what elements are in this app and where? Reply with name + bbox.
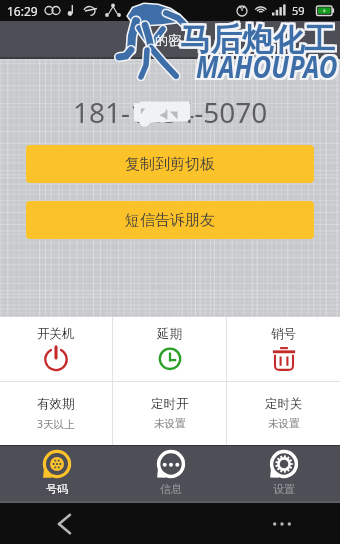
button[interactable]: Menu: [267, 509, 297, 539]
staticText: 马后炮化工: [178, 20, 333, 59]
staticText: 未设置: [154, 417, 186, 430]
staticText: 信息: [160, 482, 182, 496]
button[interactable]: 号码: [0, 446, 114, 496]
staticText: 马后炮化工: [180, 18, 335, 57]
staticText: 定时关: [265, 396, 303, 412]
staticText: MAHOUPAO: [194, 45, 336, 87]
button[interactable]: 销号: [227, 317, 340, 372]
staticText: 3天以上: [37, 417, 75, 431]
button[interactable]: 延期: [113, 317, 226, 370]
staticText: 59: [292, 3, 305, 18]
staticText: 马后炮化工: [182, 22, 337, 61]
staticText: 延期: [157, 326, 182, 342]
staticText: 设置: [273, 482, 295, 496]
button[interactable]: Back: [50, 509, 80, 539]
button[interactable]: 定时开: [113, 382, 226, 430]
staticText: 马后炮化工: [182, 18, 337, 57]
staticText: MAHOUPAO: [198, 45, 340, 87]
staticText: 181-1234-5070: [73, 93, 268, 131]
staticText: 开关机: [37, 326, 75, 342]
staticText: 马后炮化工: [180, 20, 335, 59]
staticText: 16:29: [7, 3, 38, 19]
staticText: 短信告诉朋友: [125, 211, 215, 230]
staticText: 马后炮化工: [178, 22, 333, 61]
staticText: MAHOUPAO: [198, 43, 340, 85]
other: 设置: [269, 449, 299, 479]
staticText: 未设置: [268, 417, 300, 430]
staticText: 马后炮化工: [180, 22, 335, 61]
button[interactable]: 信息: [114, 446, 227, 496]
button[interactable]: 有效期: [0, 382, 112, 431]
other: 信息: [156, 449, 186, 479]
staticText: 销号: [271, 326, 296, 342]
button[interactable]: 开关机: [0, 317, 112, 370]
staticText: MAHOUPAO: [196, 45, 338, 87]
staticText: MAHOUPAO: [198, 47, 340, 89]
staticText: 号码: [46, 482, 68, 496]
staticText: MAHOUPAO: [196, 47, 338, 89]
button[interactable]: 短信告诉朋友: [26, 201, 314, 239]
staticText: MAHOUPAO: [194, 47, 336, 89]
staticText: MAHOUPAO: [196, 43, 338, 85]
staticText: 有效期: [37, 396, 75, 412]
staticText: 马后炮化工: [178, 18, 333, 57]
staticText: 马后炮化工: [182, 20, 337, 59]
button[interactable]: 设置: [227, 446, 340, 496]
button[interactable]: 定时关: [227, 382, 340, 430]
staticText: MAHOUPAO: [194, 43, 336, 85]
staticText: 的密: [155, 32, 181, 48]
other: 号码: [42, 449, 72, 479]
staticText: 复制到剪切板: [125, 155, 215, 174]
staticText: 定时开: [151, 396, 189, 412]
button[interactable]: 复制到剪切板: [26, 145, 314, 183]
